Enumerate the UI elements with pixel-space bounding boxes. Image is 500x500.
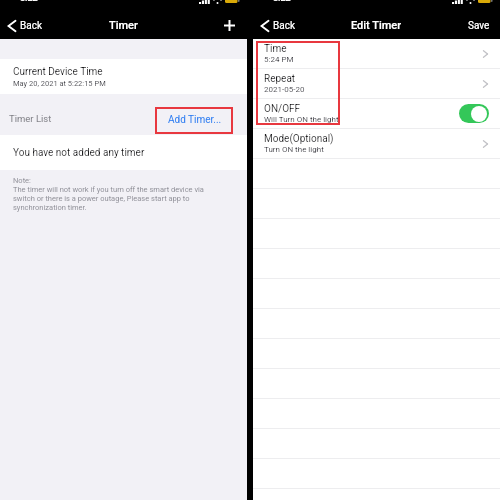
button[interactable]: You have not added any timer (0, 135, 247, 170)
button[interactable]: ON/OFF (253, 99, 500, 128)
staticText: Repeat (264, 73, 296, 85)
button[interactable]: Save (458, 15, 500, 37)
button[interactable]: Current Device Time (0, 59, 247, 94)
staticText: The timer will not work if you turn off … (13, 185, 204, 194)
staticText: Timer List (9, 113, 52, 124)
staticText: Note: (13, 176, 31, 185)
staticText: ON/OFF (264, 103, 301, 115)
staticText: Timer (109, 19, 138, 32)
staticText: Mode(Optional) (264, 133, 334, 145)
staticText: 5:22 (273, 0, 291, 4)
button[interactable]: Add timer (216, 12, 243, 39)
button[interactable]: Add Timer... (155, 107, 233, 134)
staticText: You have not added any timer (13, 147, 145, 159)
button[interactable]: Time (253, 39, 500, 68)
staticText: May 20, 2021 at 5:22:15 PM (13, 79, 106, 88)
staticText: Will Turn ON the light (264, 115, 339, 124)
staticText: Current Device Time (13, 66, 103, 78)
staticText: Save (468, 20, 490, 32)
staticText: Back (273, 20, 295, 32)
staticText: Time (264, 43, 287, 55)
button[interactable]: Back (253, 12, 303, 39)
staticText: 2021-05-20 (264, 85, 305, 94)
staticText: 5:22 (20, 0, 38, 4)
button[interactable]: Back (0, 12, 50, 39)
staticText: Back (20, 20, 42, 32)
button[interactable]: On off toggle (459, 104, 489, 123)
staticText: Add Timer... (168, 114, 222, 126)
staticText: Edit Timer (351, 19, 402, 32)
staticText: Turn ON the light (264, 145, 324, 154)
staticText: 5:24 PM (264, 55, 294, 64)
staticText: synchronization timer. (13, 203, 87, 212)
staticText: switch or there is a power outage, Pleas… (13, 194, 190, 203)
button[interactable]: Mode(Optional) (253, 129, 500, 158)
button[interactable]: Repeat (253, 69, 500, 98)
